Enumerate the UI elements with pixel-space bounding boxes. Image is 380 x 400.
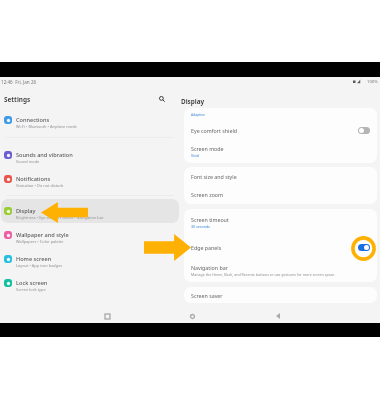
button[interactable]: Screen saver [184,287,377,303]
staticText: Eye comfort shield [191,127,238,134]
staticText: Home screen [16,255,52,263]
staticText: Display [16,207,36,215]
staticText: Navigation bar [191,264,228,271]
button[interactable]: Sounds and vibration [1,143,179,167]
button[interactable]: Navigation bar [184,259,377,282]
staticText: Statusbar • Do not disturb [16,183,64,188]
button[interactable]: Home [186,310,198,322]
staticText: Layout • App icon badges [16,263,63,268]
button[interactable]: Toggle [358,244,370,251]
staticText: Screen mode [191,145,224,152]
staticText: 30 seconds [191,224,210,229]
staticText: Sounds and vibration [16,151,73,159]
staticText: 100% [367,79,378,85]
staticText: Screen zoom [191,191,224,198]
staticText: 12:46 Fri, Jan 26 [1,79,37,85]
button[interactable]: Screen zoom [184,185,377,204]
button[interactable]: Search [156,93,168,105]
staticText: Adaptive [191,112,205,117]
staticText: Screen timeout [191,216,229,223]
staticText: Edge panels [191,244,222,251]
staticText: Display [181,97,205,106]
staticText: Settings [4,95,31,104]
staticText: Brightness • Eye comfort shield • Naviga… [16,215,104,220]
staticText: Wi-Fi • Bluetooth • Airplane mode [16,124,77,129]
staticText: Vivid [191,153,200,158]
button[interactable]: Wallpaper and style [1,223,179,247]
button[interactable]: Eye comfort shield [184,120,377,140]
button[interactable]: Display [1,199,179,223]
button[interactable]: Notifications [1,167,179,191]
staticText: Connections [16,116,50,124]
button[interactable]: Recents [101,310,113,322]
staticText: Font size and style [191,173,237,180]
button[interactable]: Connections [1,108,179,132]
button[interactable]: Toggle [358,127,370,134]
button[interactable]: Home screen [1,247,179,271]
button[interactable]: Font size and style [184,167,377,185]
staticText: Notifications [16,175,51,183]
button[interactable]: Lock screen [1,271,179,295]
staticText: Lock screen [16,279,48,287]
staticText: Screen lock type [16,287,46,292]
staticText: Manage the Home, Back, and Recents butto… [191,272,336,277]
button[interactable]: Screen mode [184,140,377,163]
staticText: Wallpapers • Color palette [16,239,64,244]
button[interactable]: Screen timeout [184,209,377,235]
button[interactable]: Back [272,310,284,322]
staticText: Screen saver [191,292,223,299]
button[interactable]: Edge panels [184,235,377,259]
staticText: Sound mode [16,159,40,164]
staticText: Wallpaper and style [16,231,69,239]
